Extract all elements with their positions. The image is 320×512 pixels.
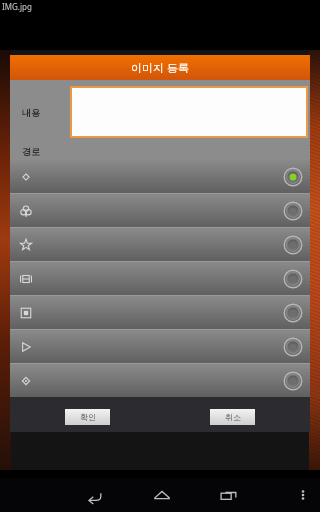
button[interactable]: Option [10,330,310,363]
button[interactable]: Option [10,228,310,261]
staticText: IMG.jpg [2,1,32,12]
button[interactable]: Home [146,478,178,512]
staticText: 내용 [22,107,40,118]
button[interactable]: Recent apps [213,478,245,512]
staticText: 취소 [225,412,241,422]
button[interactable]: Option [10,194,310,227]
button[interactable]: Option [10,296,310,329]
button[interactable]: Option [10,160,310,193]
button[interactable]: Back [78,478,110,512]
staticText: 이미지 등록 [131,60,189,75]
button[interactable] [70,86,308,138]
button[interactable]: 취소 [210,409,255,425]
button[interactable]: 확인 [65,409,110,425]
button[interactable]: More options [290,478,316,512]
button[interactable]: Option [10,364,310,397]
staticText: 확인 [80,412,96,422]
button[interactable]: Option [10,262,310,295]
staticText: 경로 [22,146,40,157]
